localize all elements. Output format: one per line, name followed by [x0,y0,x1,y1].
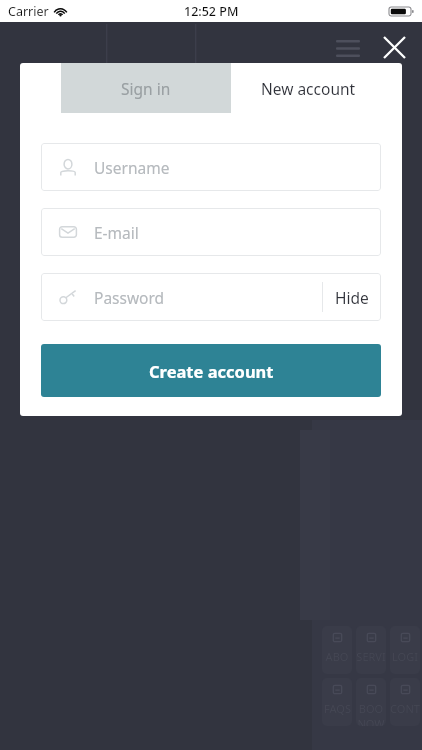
button[interactable]: Password [41,273,381,321]
staticText: FAQS [324,701,351,716]
staticText: Username [94,157,170,178]
button[interactable]: Create account [41,344,381,397]
button[interactable]: Close [371,24,417,70]
button[interactable]: Menu [326,26,370,70]
staticText: E-mail [94,222,139,243]
staticText: Carrier [8,3,49,20]
button[interactable]: Hide [323,274,381,320]
button[interactable]: New account [231,63,402,113]
staticText: New account [261,78,356,99]
button[interactable]: E-mail [41,208,381,256]
staticText: 12:52 PM [184,3,239,20]
staticText: Sign in [121,78,171,99]
staticText: Create account [149,360,274,382]
button[interactable]: Sign in [61,63,231,113]
staticText: Password [94,287,165,308]
button[interactable]: Username [41,143,381,191]
button[interactable]: BOOK [356,678,386,726]
staticText: Hide [335,287,369,308]
